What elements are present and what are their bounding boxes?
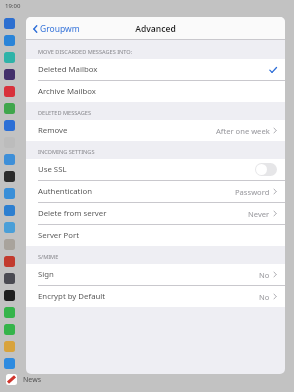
- staticText: S/MIME: [38, 253, 59, 261]
- staticText: Never: [248, 209, 270, 219]
- button[interactable]: App icon: [4, 256, 15, 267]
- staticText: After one week: [216, 126, 270, 136]
- button[interactable]: Remove: [26, 120, 285, 141]
- button[interactable]: Use SSL toggle, off: [255, 163, 277, 176]
- button[interactable]: App icon: [4, 290, 15, 301]
- button[interactable]: News app: [6, 374, 17, 385]
- staticText: Archive Mailbox: [38, 86, 96, 97]
- staticText: INCOMING SETTINGS: [38, 148, 95, 156]
- staticText: Authentication: [38, 186, 92, 197]
- staticText: Server Port: [38, 230, 79, 241]
- button[interactable]: App icon: [4, 86, 15, 97]
- button[interactable]: Groupwm: [31, 19, 82, 39]
- staticText: DELETED MESSAGES: [38, 109, 92, 117]
- staticText: Advanced: [135, 23, 176, 35]
- staticText: Password: [235, 187, 270, 197]
- button[interactable]: App icon: [4, 35, 15, 46]
- staticText: MOVE DISCARDED MESSAGES INTO:: [38, 48, 133, 56]
- button[interactable]: App icon: [4, 18, 15, 29]
- button[interactable]: Sign: [26, 264, 285, 285]
- button[interactable]: Delete from server: [26, 203, 285, 224]
- staticText: News: [23, 375, 41, 385]
- button[interactable]: App icon: [4, 103, 15, 114]
- button[interactable]: App icon: [4, 188, 15, 199]
- staticText: Sign: [38, 269, 54, 280]
- staticText: Delete from server: [38, 208, 107, 219]
- button[interactable]: Archive Mailbox: [26, 81, 285, 102]
- staticText: No: [259, 270, 270, 280]
- button[interactable]: App icon: [4, 69, 15, 80]
- button[interactable]: App icon: [4, 171, 15, 182]
- button[interactable]: App icon: [4, 222, 15, 233]
- button[interactable]: App icon: [4, 120, 15, 131]
- button[interactable]: App icon: [4, 239, 15, 250]
- button[interactable]: App icon: [4, 341, 15, 352]
- staticText: Remove: [38, 125, 68, 136]
- button[interactable]: App icon: [4, 273, 15, 284]
- button[interactable]: Encrypt by Default: [26, 286, 285, 307]
- button[interactable]: App icon: [4, 358, 15, 369]
- staticText: Use SSL: [38, 164, 67, 175]
- button[interactable]: Server Port: [26, 225, 285, 246]
- button[interactable]: Use SSL: [26, 159, 285, 180]
- staticText: 19:00: [5, 2, 21, 10]
- staticText: No: [259, 292, 270, 302]
- button[interactable]: App icon: [4, 205, 15, 216]
- button[interactable]: App icon: [4, 154, 15, 165]
- staticText: Groupwm: [40, 23, 80, 35]
- staticText: Deleted Mailbox: [38, 64, 98, 75]
- staticText: Encrypt by Default: [38, 291, 106, 302]
- button[interactable]: App icon: [4, 324, 15, 335]
- button[interactable]: Deleted Mailbox: [26, 59, 285, 80]
- button[interactable]: App icon: [4, 52, 15, 63]
- button[interactable]: Authentication: [26, 181, 285, 202]
- button[interactable]: App icon: [4, 307, 15, 318]
